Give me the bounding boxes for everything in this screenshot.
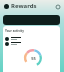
button[interactable]: [3, 41, 60, 46]
button[interactable]: Settings: [55, 4, 60, 9]
staticText: Your activity: [5, 29, 24, 33]
button[interactable]: [3, 36, 60, 41]
button[interactable]: [3, 15, 60, 25]
button[interactable]: Profile: [4, 4, 9, 9]
staticText: 55: [31, 56, 36, 61]
staticText: Rewards: [11, 2, 37, 10]
